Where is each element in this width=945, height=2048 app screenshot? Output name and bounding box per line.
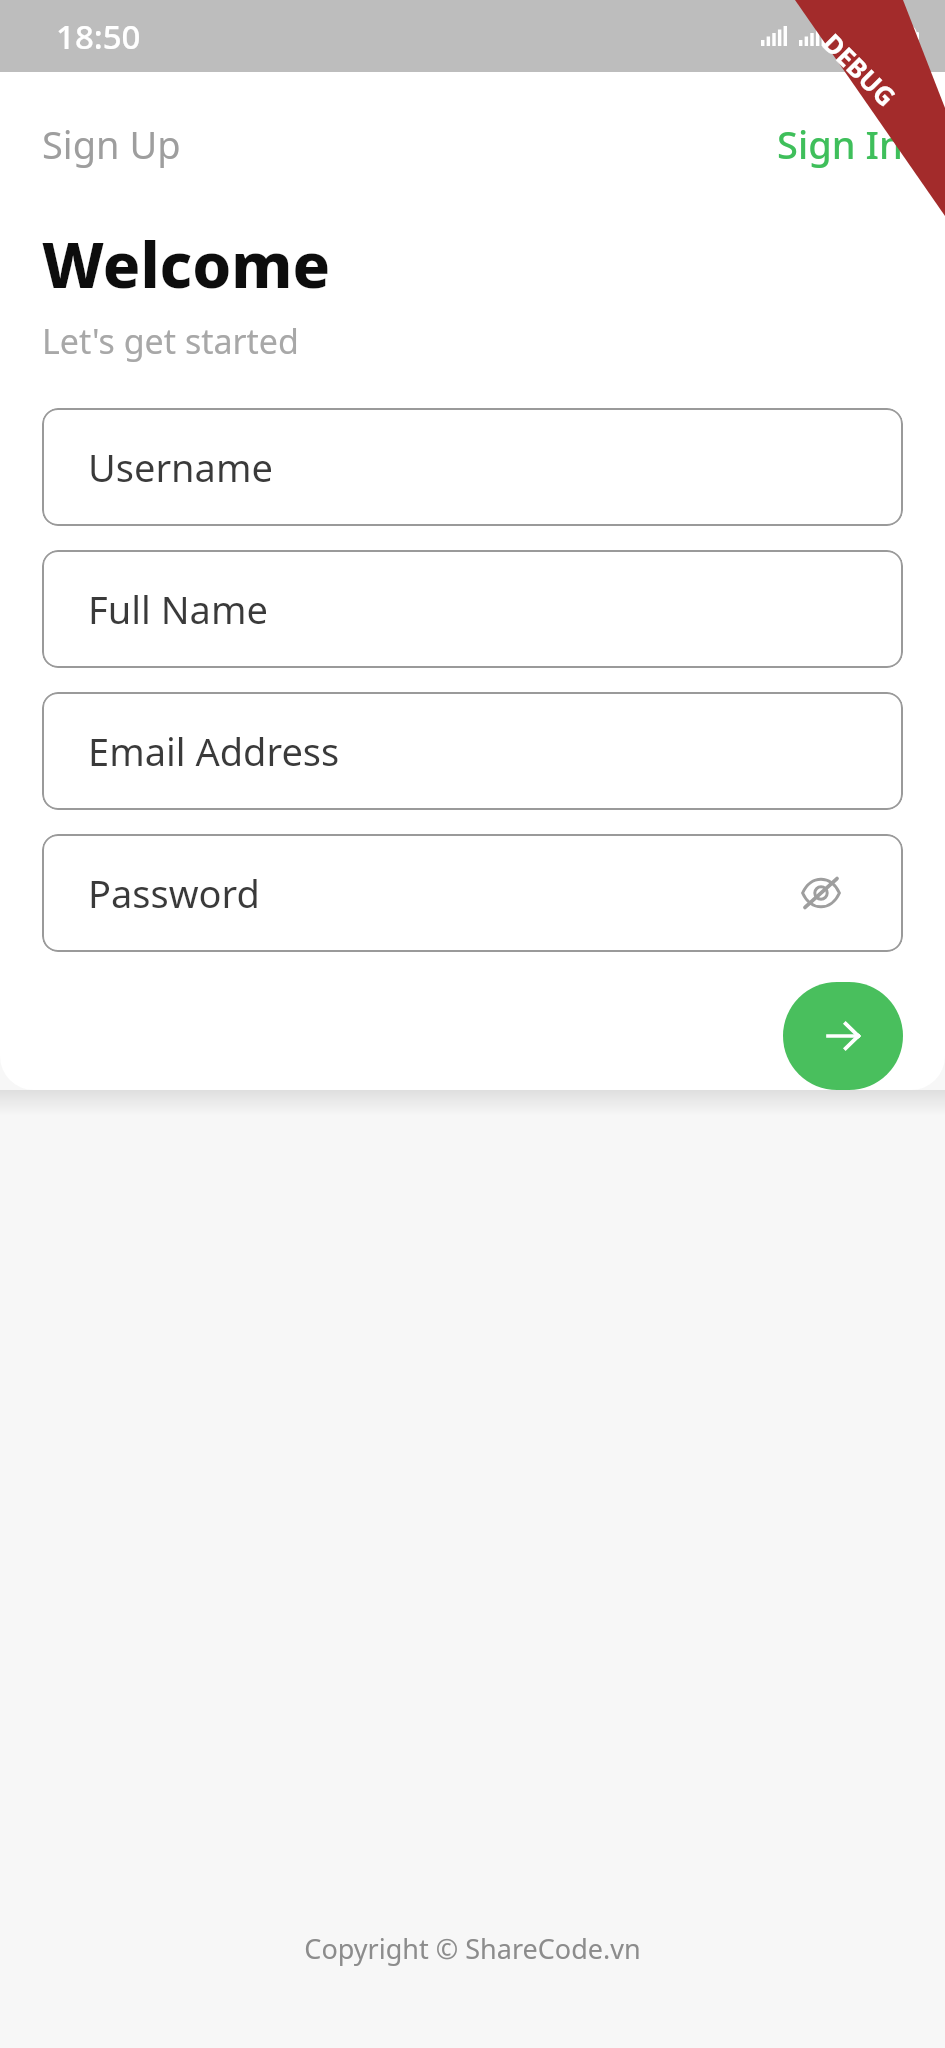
staticText: Password [88, 867, 260, 919]
staticText: Welcome [42, 222, 331, 306]
staticText: DEBUG [816, 25, 904, 114]
button[interactable]: Continue [783, 982, 903, 1090]
staticText: Copyright © ShareCode.vn [304, 1930, 641, 1967]
staticText: Email Address [88, 725, 340, 777]
button[interactable]: Sign In [777, 112, 903, 176]
button[interactable]: Email Address [42, 692, 903, 810]
button[interactable]: Password [42, 834, 903, 952]
button[interactable]: Sign Up [42, 112, 181, 176]
staticText: Sign Up [42, 118, 181, 170]
staticText: Sign In [777, 118, 903, 170]
button[interactable]: Username [42, 408, 903, 526]
staticText: Full Name [88, 583, 268, 635]
staticText: 18:50 [56, 14, 141, 59]
staticText: Username [88, 441, 273, 493]
button[interactable]: Full Name [42, 550, 903, 668]
staticText: Let's get started [42, 318, 299, 364]
button[interactable]: Toggle password visibility [785, 857, 857, 929]
